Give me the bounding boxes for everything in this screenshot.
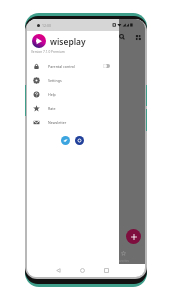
staticText: Help — [48, 92, 56, 97]
button[interactable]: Home — [78, 266, 87, 275]
staticText: Newsletter — [48, 120, 67, 125]
staticText: wiseplay — [50, 36, 86, 47]
button[interactable]: Add — [126, 229, 141, 244]
button[interactable]: Recents — [102, 266, 111, 275]
staticText: 12:00 — [42, 23, 51, 28]
button[interactable]: Grid view — [134, 33, 142, 41]
staticText: Settings — [48, 78, 62, 83]
staticText: Rate — [48, 106, 56, 111]
button[interactable]: Search — [118, 33, 126, 41]
button[interactable]: Back — [54, 266, 63, 275]
button[interactable]: Instagram — [75, 136, 84, 145]
button[interactable]: Parental control — [27, 59, 119, 73]
staticText: Favorites — [117, 259, 129, 263]
button[interactable]: Help — [27, 87, 119, 101]
staticText: Version 7.1.0 Premium — [31, 50, 65, 54]
button[interactable]: Newsletter — [27, 115, 119, 129]
staticText: Parental control — [48, 64, 75, 69]
button[interactable]: Favorites — [112, 251, 134, 263]
button[interactable]: Rate — [27, 101, 119, 115]
button[interactable]: Twitter — [61, 136, 70, 145]
button[interactable]: Settings — [27, 73, 119, 87]
